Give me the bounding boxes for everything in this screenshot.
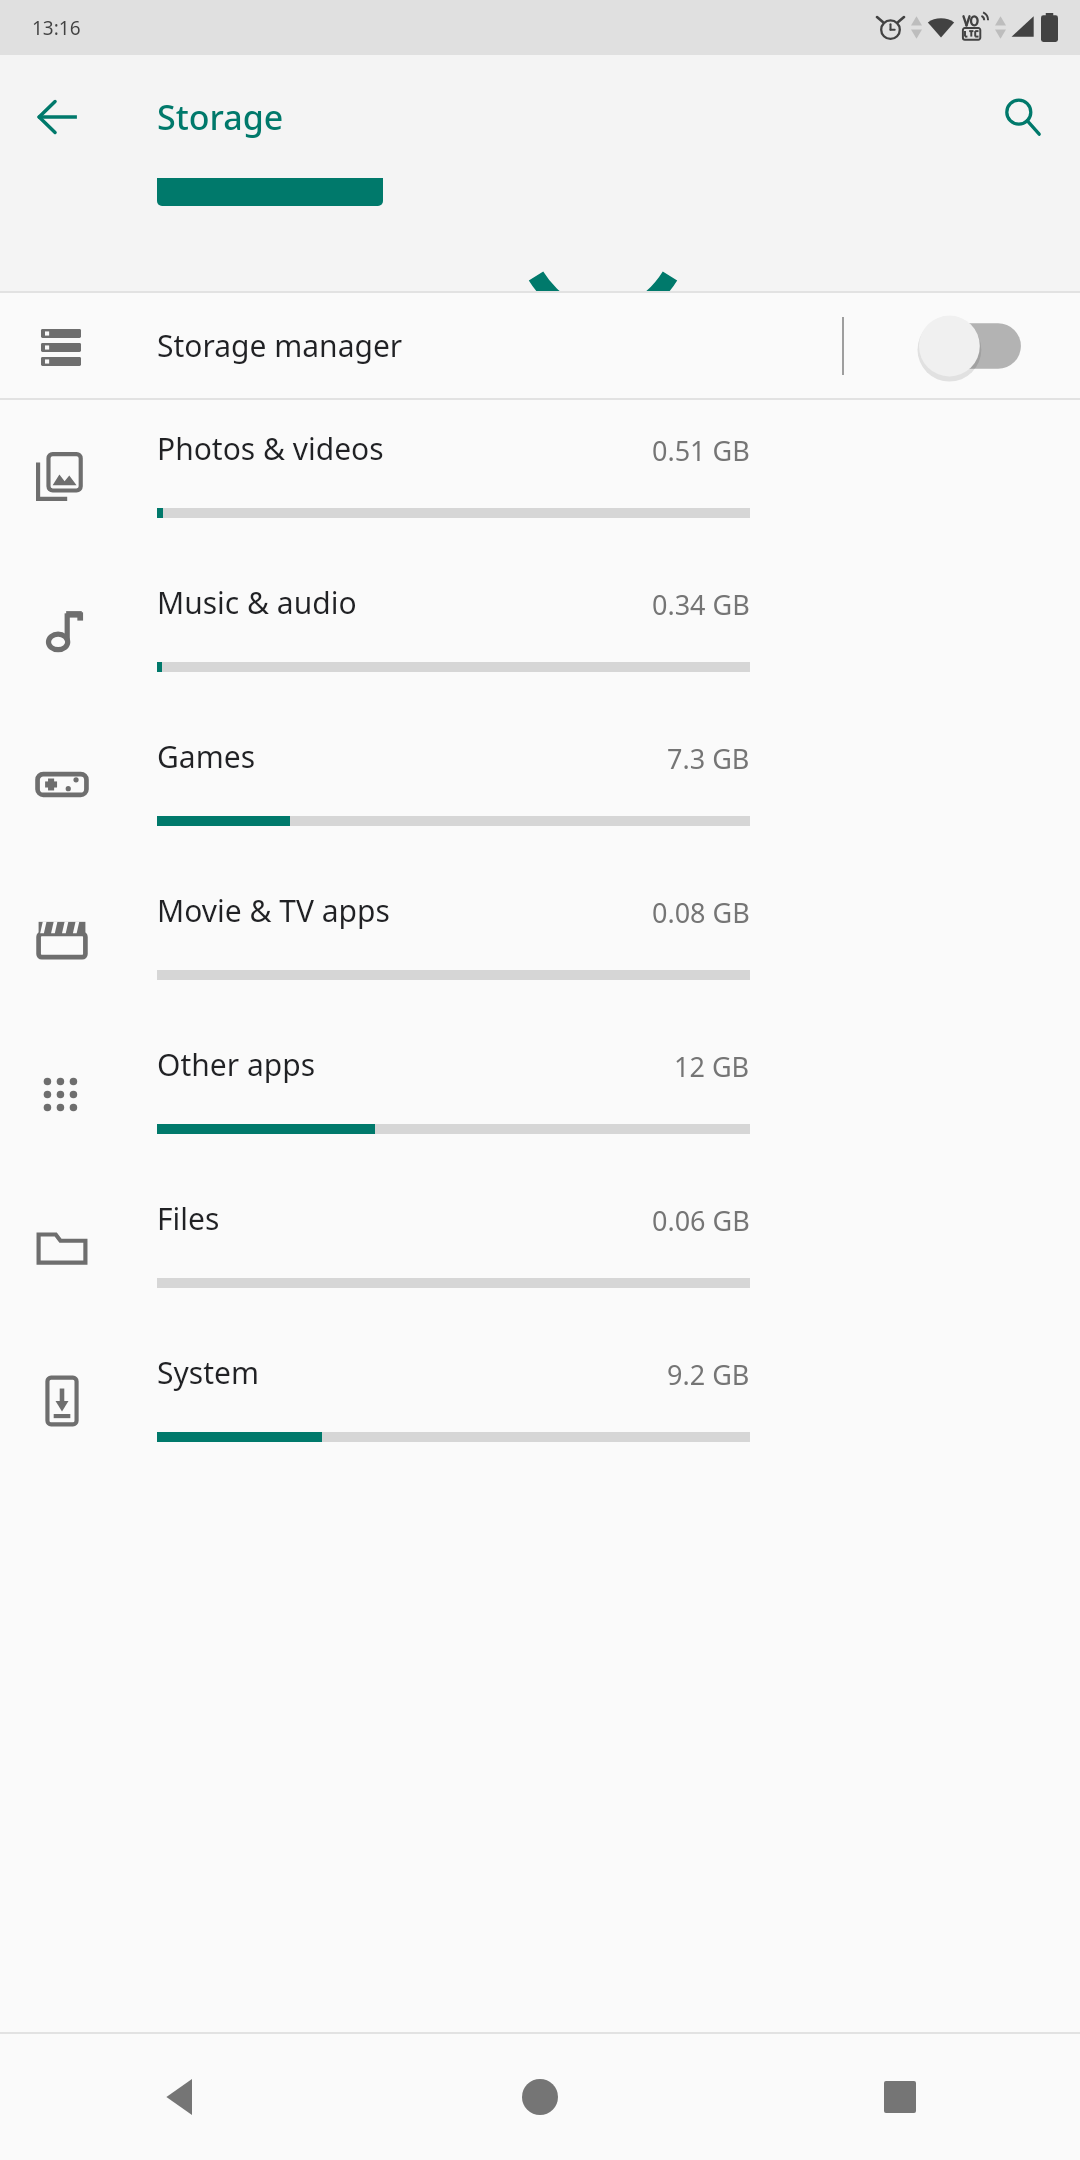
button[interactable]: Files: [0, 1170, 1080, 1324]
staticText: Other apps: [157, 1044, 316, 1085]
button[interactable]: Music & audio: [0, 554, 1080, 708]
staticText: System: [157, 1352, 259, 1393]
staticText: Photos & videos: [157, 428, 384, 469]
button[interactable]: Search: [984, 79, 1060, 155]
button[interactable]: Home: [360, 2034, 720, 2160]
button[interactable]: Other apps: [0, 1016, 1080, 1170]
button[interactable]: Back: [0, 2034, 360, 2160]
staticText: Games: [157, 736, 256, 777]
button[interactable]: Recent apps: [720, 2034, 1080, 2160]
button[interactable]: Storage manager: [0, 293, 1080, 398]
button[interactable]: Games: [0, 708, 1080, 862]
staticText: Music & audio: [157, 582, 357, 623]
staticText: Files: [157, 1198, 220, 1239]
staticText: 0.08 GB: [652, 894, 750, 931]
button[interactable]: Navigate up: [20, 79, 96, 155]
button[interactable]: Storage manager: [910, 308, 1028, 384]
staticText: 9.2 GB: [667, 1356, 750, 1393]
button[interactable]: [157, 178, 383, 206]
button[interactable]: Movie & TV apps: [0, 862, 1080, 1016]
button[interactable]: System: [0, 1324, 1080, 1478]
staticText: Storage: [157, 94, 284, 140]
staticText: 0.34 GB: [652, 586, 750, 623]
staticText: 7.3 GB: [667, 740, 750, 777]
staticText: Storage manager: [157, 325, 403, 366]
staticText: 13:16: [32, 15, 81, 41]
staticText: 0.51 GB: [652, 432, 750, 469]
button[interactable]: Photos & videos: [0, 400, 1080, 554]
staticText: Movie & TV apps: [157, 890, 390, 931]
staticText: 0.06 GB: [652, 1202, 750, 1239]
staticText: 12 GB: [674, 1048, 750, 1085]
